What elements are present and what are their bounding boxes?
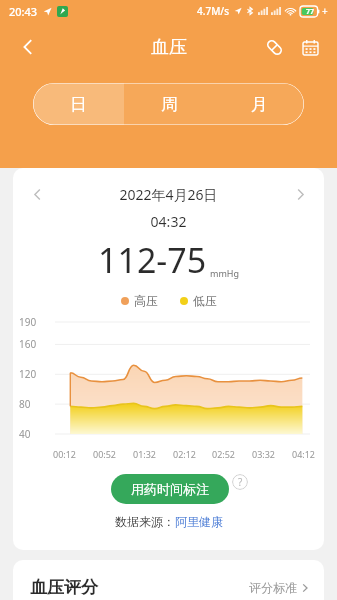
button[interactable]: Help xyxy=(232,474,248,490)
staticText: 血压评分 xyxy=(30,577,98,598)
button[interactable]: 月 xyxy=(214,83,304,125)
button[interactable]: Previous day xyxy=(23,180,51,208)
button[interactable]: 用药时间标注 xyxy=(111,474,229,504)
staticText: 血压 xyxy=(151,36,187,59)
staticText: 120 xyxy=(19,367,37,381)
button[interactable]: Calendar xyxy=(293,30,327,64)
button[interactable]: 周 xyxy=(124,83,214,125)
staticText: 评分标准 xyxy=(249,580,297,595)
staticText: 77 xyxy=(306,7,315,17)
staticText: 160 xyxy=(19,337,37,351)
staticText: 02:12 xyxy=(173,448,197,460)
staticText: 00:52 xyxy=(93,448,117,460)
staticText: 数据来源： xyxy=(115,514,175,529)
staticText: 04:12 xyxy=(292,448,316,460)
staticText: 02:52 xyxy=(212,448,236,460)
staticText: ? xyxy=(238,475,243,489)
staticText: 40 xyxy=(19,427,31,441)
staticText: 20:43 xyxy=(9,4,38,19)
staticText: 03:32 xyxy=(252,448,276,460)
staticText: mmHg xyxy=(210,267,240,279)
button[interactable]: 日 xyxy=(33,83,124,125)
staticText: 阿里健康 xyxy=(175,514,223,529)
staticText: 04:32 xyxy=(13,212,324,231)
button[interactable]: 数据来源： xyxy=(13,514,324,529)
staticText: 190 xyxy=(19,315,37,329)
button[interactable]: Next day xyxy=(286,180,314,208)
staticText: 2022年4月26日 xyxy=(51,185,286,204)
staticText: 80 xyxy=(19,397,31,411)
staticText: 日 xyxy=(70,94,87,115)
staticText: 月 xyxy=(251,94,268,115)
staticText: 周 xyxy=(161,94,178,115)
staticText: + xyxy=(322,4,328,18)
staticText: 4.7M/s xyxy=(197,4,230,18)
button[interactable]: Back xyxy=(8,27,48,67)
staticText: 高压 xyxy=(134,293,158,308)
staticText: 低压 xyxy=(193,293,217,308)
button[interactable]: Medication xyxy=(257,30,291,64)
staticText: 01:32 xyxy=(133,448,157,460)
staticText: 112-75 xyxy=(98,237,207,283)
staticText: 用药时间标注 xyxy=(131,481,209,497)
staticText: 00:12 xyxy=(53,448,77,460)
button[interactable]: 评分标准 xyxy=(249,580,310,595)
